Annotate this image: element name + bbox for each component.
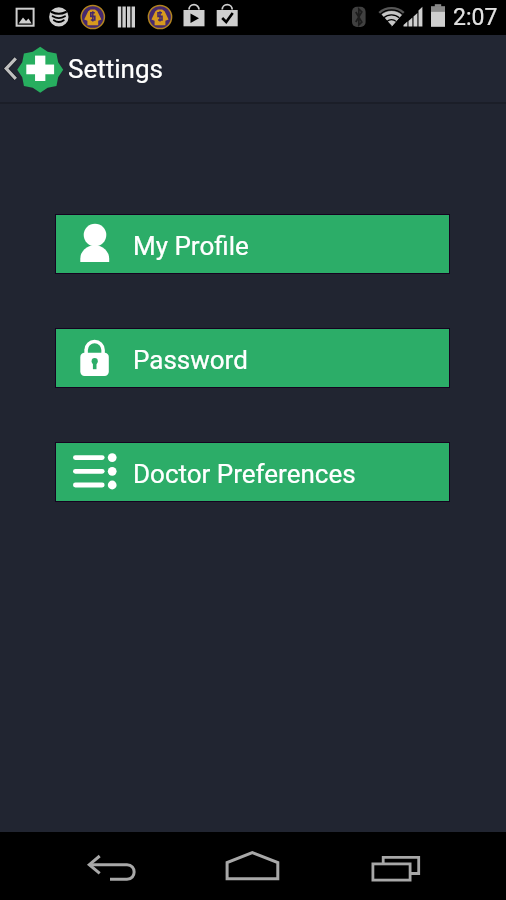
staticText: My Profile [133,231,249,261]
staticText: Password [133,345,248,375]
button[interactable]: Recent apps [337,832,506,900]
button[interactable]: Back [0,35,62,102]
staticText: 2:07 [453,4,498,31]
button[interactable]: Back [0,832,168,900]
staticText: Settings [68,54,163,84]
button[interactable]: Home [168,832,337,900]
staticText: Doctor Preferences [133,459,356,489]
button[interactable]: My Profile [56,215,449,273]
button[interactable]: Doctor Preferences [56,443,449,501]
button[interactable]: Password [56,329,449,387]
